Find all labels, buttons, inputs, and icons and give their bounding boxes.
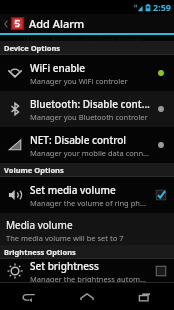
staticText: Manager your mobile data connection	[30, 148, 150, 158]
staticText: Add Alarm	[29, 16, 85, 31]
other: Unchecked	[154, 264, 168, 278]
staticText: Set brightness	[30, 259, 99, 273]
other: Checked	[154, 188, 168, 202]
staticText: Manager you WiFi controler	[30, 76, 128, 86]
button[interactable]: Back	[0, 283, 58, 310]
button[interactable]: Media volume	[0, 177, 174, 213]
button[interactable]: Home	[58, 283, 116, 310]
staticText: Media volume	[6, 218, 73, 232]
staticText: Manager the brightness automatically	[30, 274, 150, 282]
other: Media volume	[7, 187, 23, 203]
other: Mobile data	[7, 137, 23, 153]
button[interactable]: Up	[0, 14, 174, 33]
button[interactable]: Recent apps	[116, 283, 174, 310]
staticText: Manager you Bluetooth controler	[30, 112, 148, 122]
button[interactable]: Brightness	[0, 259, 174, 282]
other: Bluetooth	[7, 101, 23, 117]
staticText: 2:59	[153, 1, 171, 13]
staticText: Manager the volume of ring phone	[30, 198, 150, 208]
staticText: Brightness Options	[4, 247, 76, 257]
staticText: NET: Disable control	[30, 133, 127, 147]
button[interactable]: Mobile data	[0, 127, 174, 163]
staticText: WiFi enable	[30, 61, 86, 75]
other: Brightness	[7, 263, 23, 279]
staticText: Manager automatic sync of your accounts	[24, 35, 142, 41]
button[interactable]: WiFi	[0, 55, 174, 91]
staticText: Bluetooth: Disable control	[30, 97, 150, 111]
staticText: Device Options	[4, 43, 61, 53]
staticText: Set media volume	[30, 183, 116, 197]
other: WiFi	[7, 65, 23, 81]
staticText: The media volume will be set to 7	[6, 233, 124, 243]
button[interactable]: Bluetooth	[0, 91, 174, 127]
button[interactable]: Media volume	[0, 213, 174, 245]
other: Up	[3, 19, 9, 29]
staticText: Volume Options	[4, 165, 64, 175]
